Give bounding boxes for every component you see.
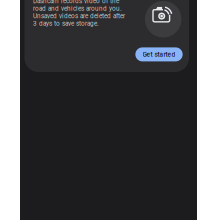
staticText: Get started <box>142 51 175 58</box>
button[interactable]: Get started <box>135 47 183 61</box>
staticText: Unsaved videos are deleted after <box>33 12 125 20</box>
staticText: 3 days to save storage. <box>33 20 99 27</box>
staticText: Dashcam records video of the <box>33 0 119 5</box>
staticText: road and vehicles around you. <box>33 5 122 12</box>
